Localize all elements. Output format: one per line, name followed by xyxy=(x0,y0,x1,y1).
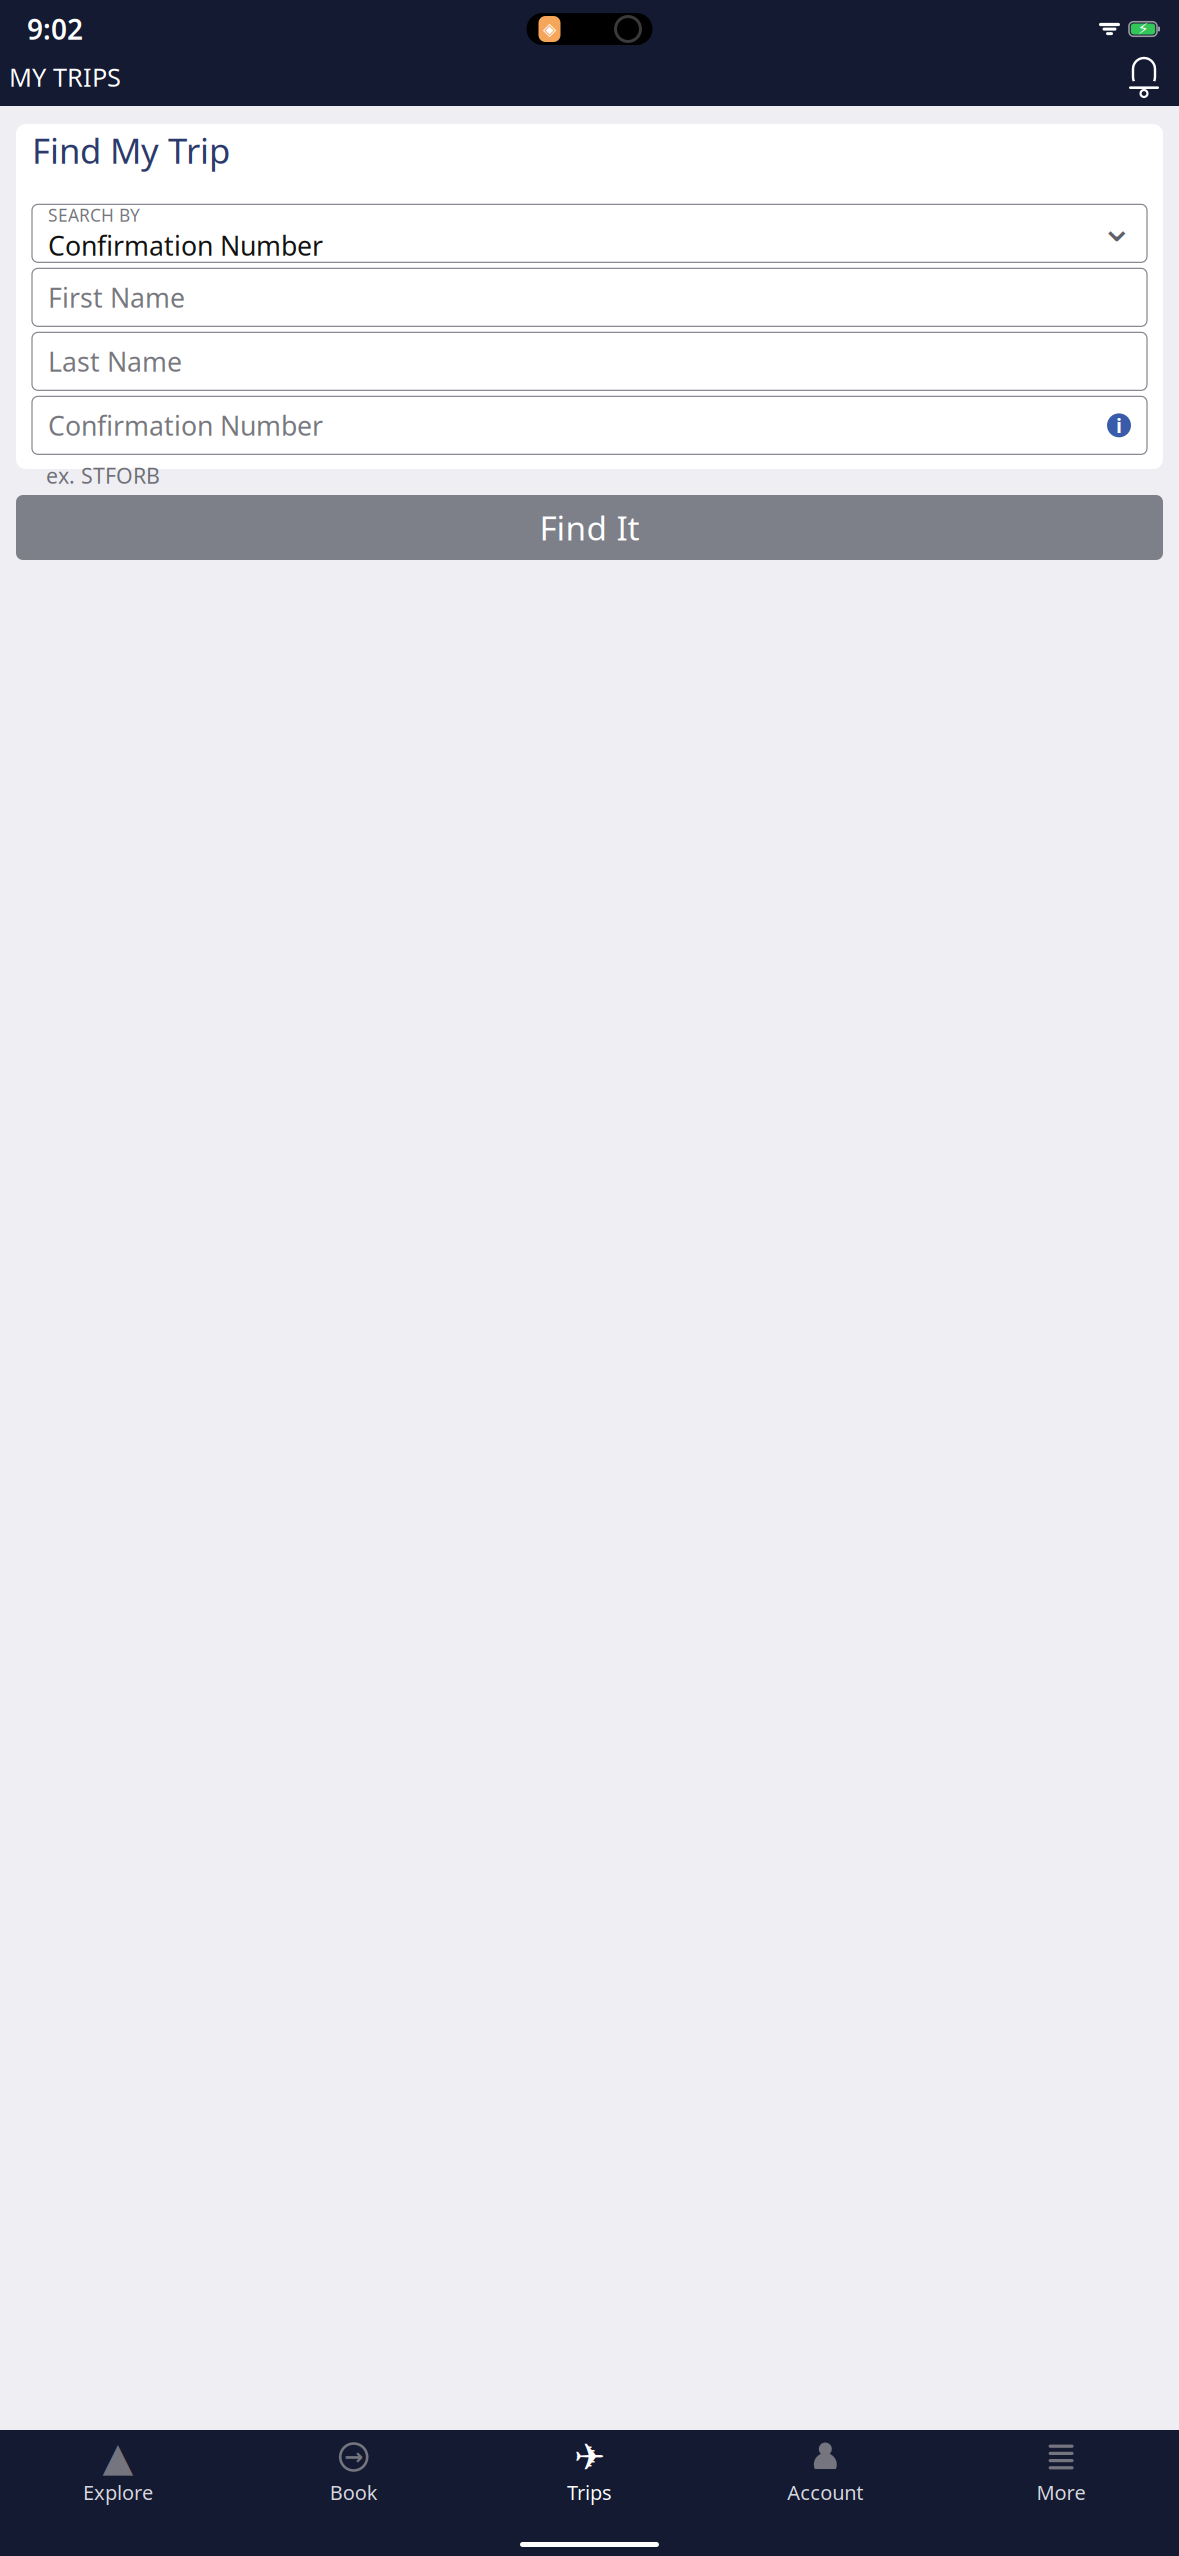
staticText: i xyxy=(1116,412,1122,439)
staticText: More xyxy=(1037,2479,1086,2506)
staticText: Account xyxy=(787,2479,863,2506)
staticText: Explore xyxy=(83,2479,153,2506)
staticText: ◈ xyxy=(543,19,556,39)
button[interactable]: Notifications xyxy=(1121,54,1167,100)
staticText: Last Name xyxy=(48,344,182,379)
staticText: Book xyxy=(330,2479,378,2506)
button[interactable]: ▲ xyxy=(0,2430,236,2512)
button[interactable]: First Name xyxy=(32,268,1147,326)
button[interactable]: Account xyxy=(707,2430,943,2512)
button[interactable]: → xyxy=(236,2430,472,2512)
staticText: ▲ xyxy=(102,2434,133,2480)
staticText: Trips xyxy=(567,2479,612,2506)
staticText: MY TRIPS xyxy=(9,60,121,94)
button[interactable]: Confirmation Number xyxy=(32,396,1147,454)
button[interactable]: Last Name xyxy=(32,332,1147,390)
staticText: 9:02 xyxy=(27,10,83,48)
staticText: ⌄ xyxy=(1100,205,1134,250)
staticText: Find It xyxy=(539,505,639,550)
button[interactable]: ✈ xyxy=(472,2430,707,2512)
staticText: Confirmation Number xyxy=(48,228,323,263)
staticText: ✈ xyxy=(574,2436,605,2478)
button[interactable]: SEARCH BY xyxy=(32,204,1147,262)
staticText: Confirmation Number xyxy=(48,408,323,443)
staticText: SEARCH BY xyxy=(48,204,140,227)
staticText: → xyxy=(344,2444,363,2470)
staticText: Find My Trip xyxy=(32,127,230,173)
staticText: First Name xyxy=(48,280,185,315)
staticText: ⚡︎ xyxy=(1137,20,1148,38)
staticText: ex. STFORB xyxy=(46,461,160,490)
button[interactable]: More xyxy=(943,2430,1179,2512)
button[interactable]: Find It xyxy=(16,495,1163,560)
